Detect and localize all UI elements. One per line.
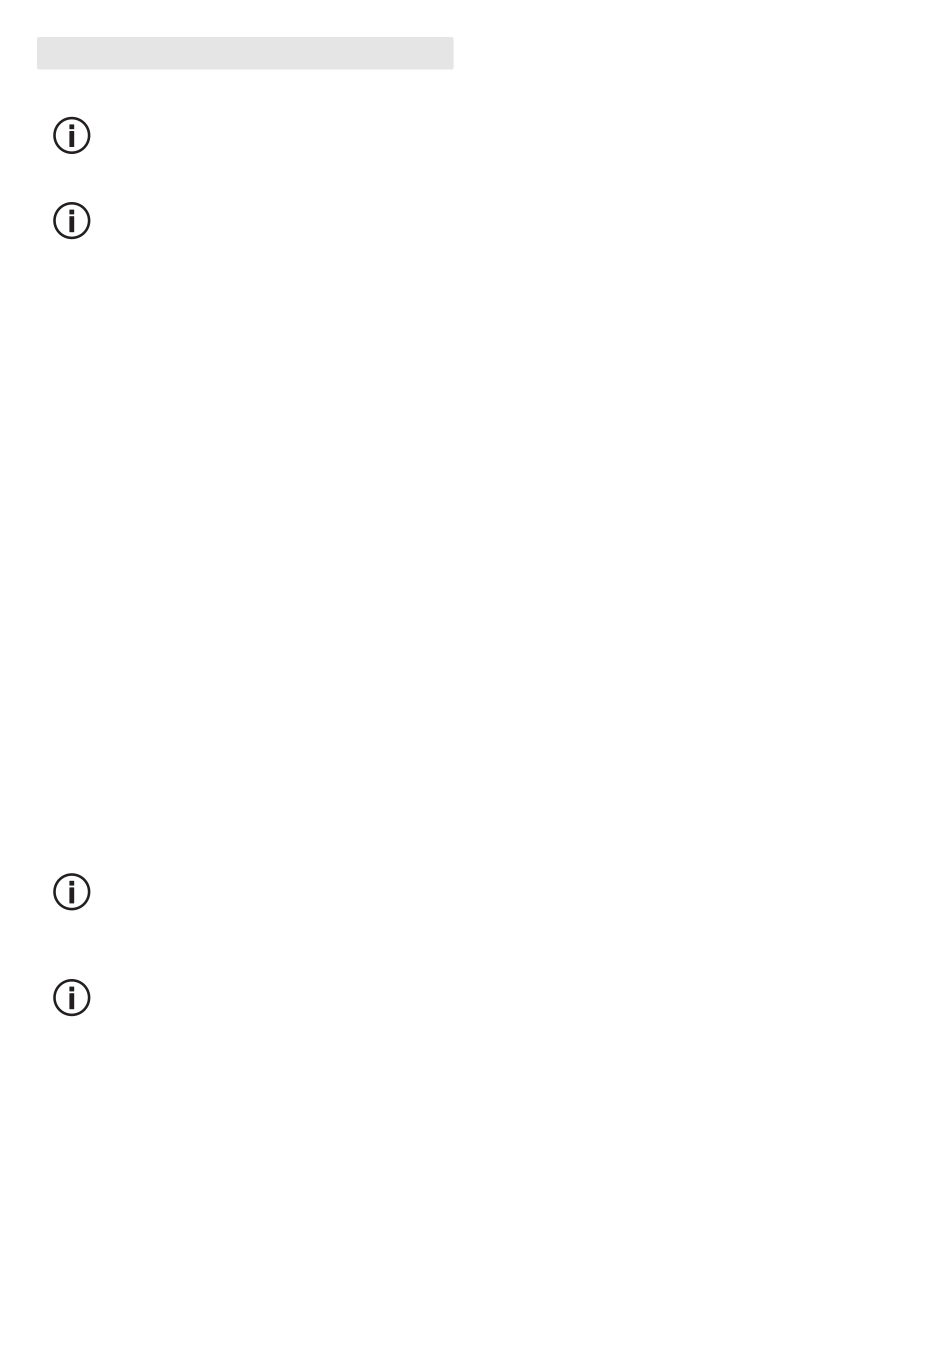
button[interactable]: More information bbox=[0, 873, 950, 910]
button[interactable]: More information bbox=[0, 202, 950, 239]
button[interactable]: More information bbox=[0, 979, 950, 1016]
button[interactable]: More information bbox=[0, 117, 950, 154]
